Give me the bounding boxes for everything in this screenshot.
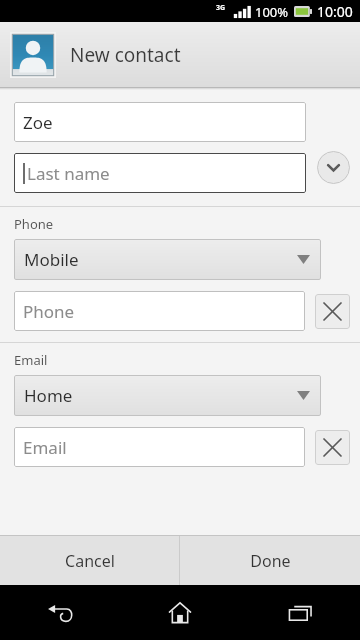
staticText: 100% [255, 3, 289, 21]
button[interactable]: Remove Phone [315, 294, 350, 329]
button[interactable]: Zoe [14, 102, 306, 142]
staticText: Mobile [24, 248, 79, 271]
staticText: Zoe [23, 111, 53, 134]
button[interactable]: Last name [14, 153, 306, 193]
staticText: Phone [14, 215, 54, 233]
staticText: Email [14, 351, 48, 369]
staticText: Home [24, 384, 73, 407]
staticText: 3G [216, 3, 226, 13]
button[interactable]: Cancel [0, 536, 179, 585]
staticText: New contact [70, 42, 181, 68]
staticText: Last name [27, 162, 110, 185]
button[interactable]: Home [120, 585, 240, 640]
staticText: Done [250, 550, 291, 572]
button[interactable]: Done [180, 536, 360, 585]
staticText: Phone [23, 300, 75, 323]
button[interactable]: Home [14, 375, 321, 416]
button[interactable]: Expand name fields [317, 151, 350, 184]
button[interactable]: Email [14, 427, 305, 467]
staticText: Email [23, 436, 67, 459]
button[interactable]: Back [0, 585, 120, 640]
button[interactable]: Mobile [14, 239, 321, 280]
button[interactable]: Remove Email [315, 430, 350, 465]
staticText: Cancel [65, 550, 115, 572]
staticText: 10:00 [317, 2, 353, 21]
button[interactable]: Phone [14, 291, 305, 331]
button[interactable]: Recent apps [240, 585, 360, 640]
